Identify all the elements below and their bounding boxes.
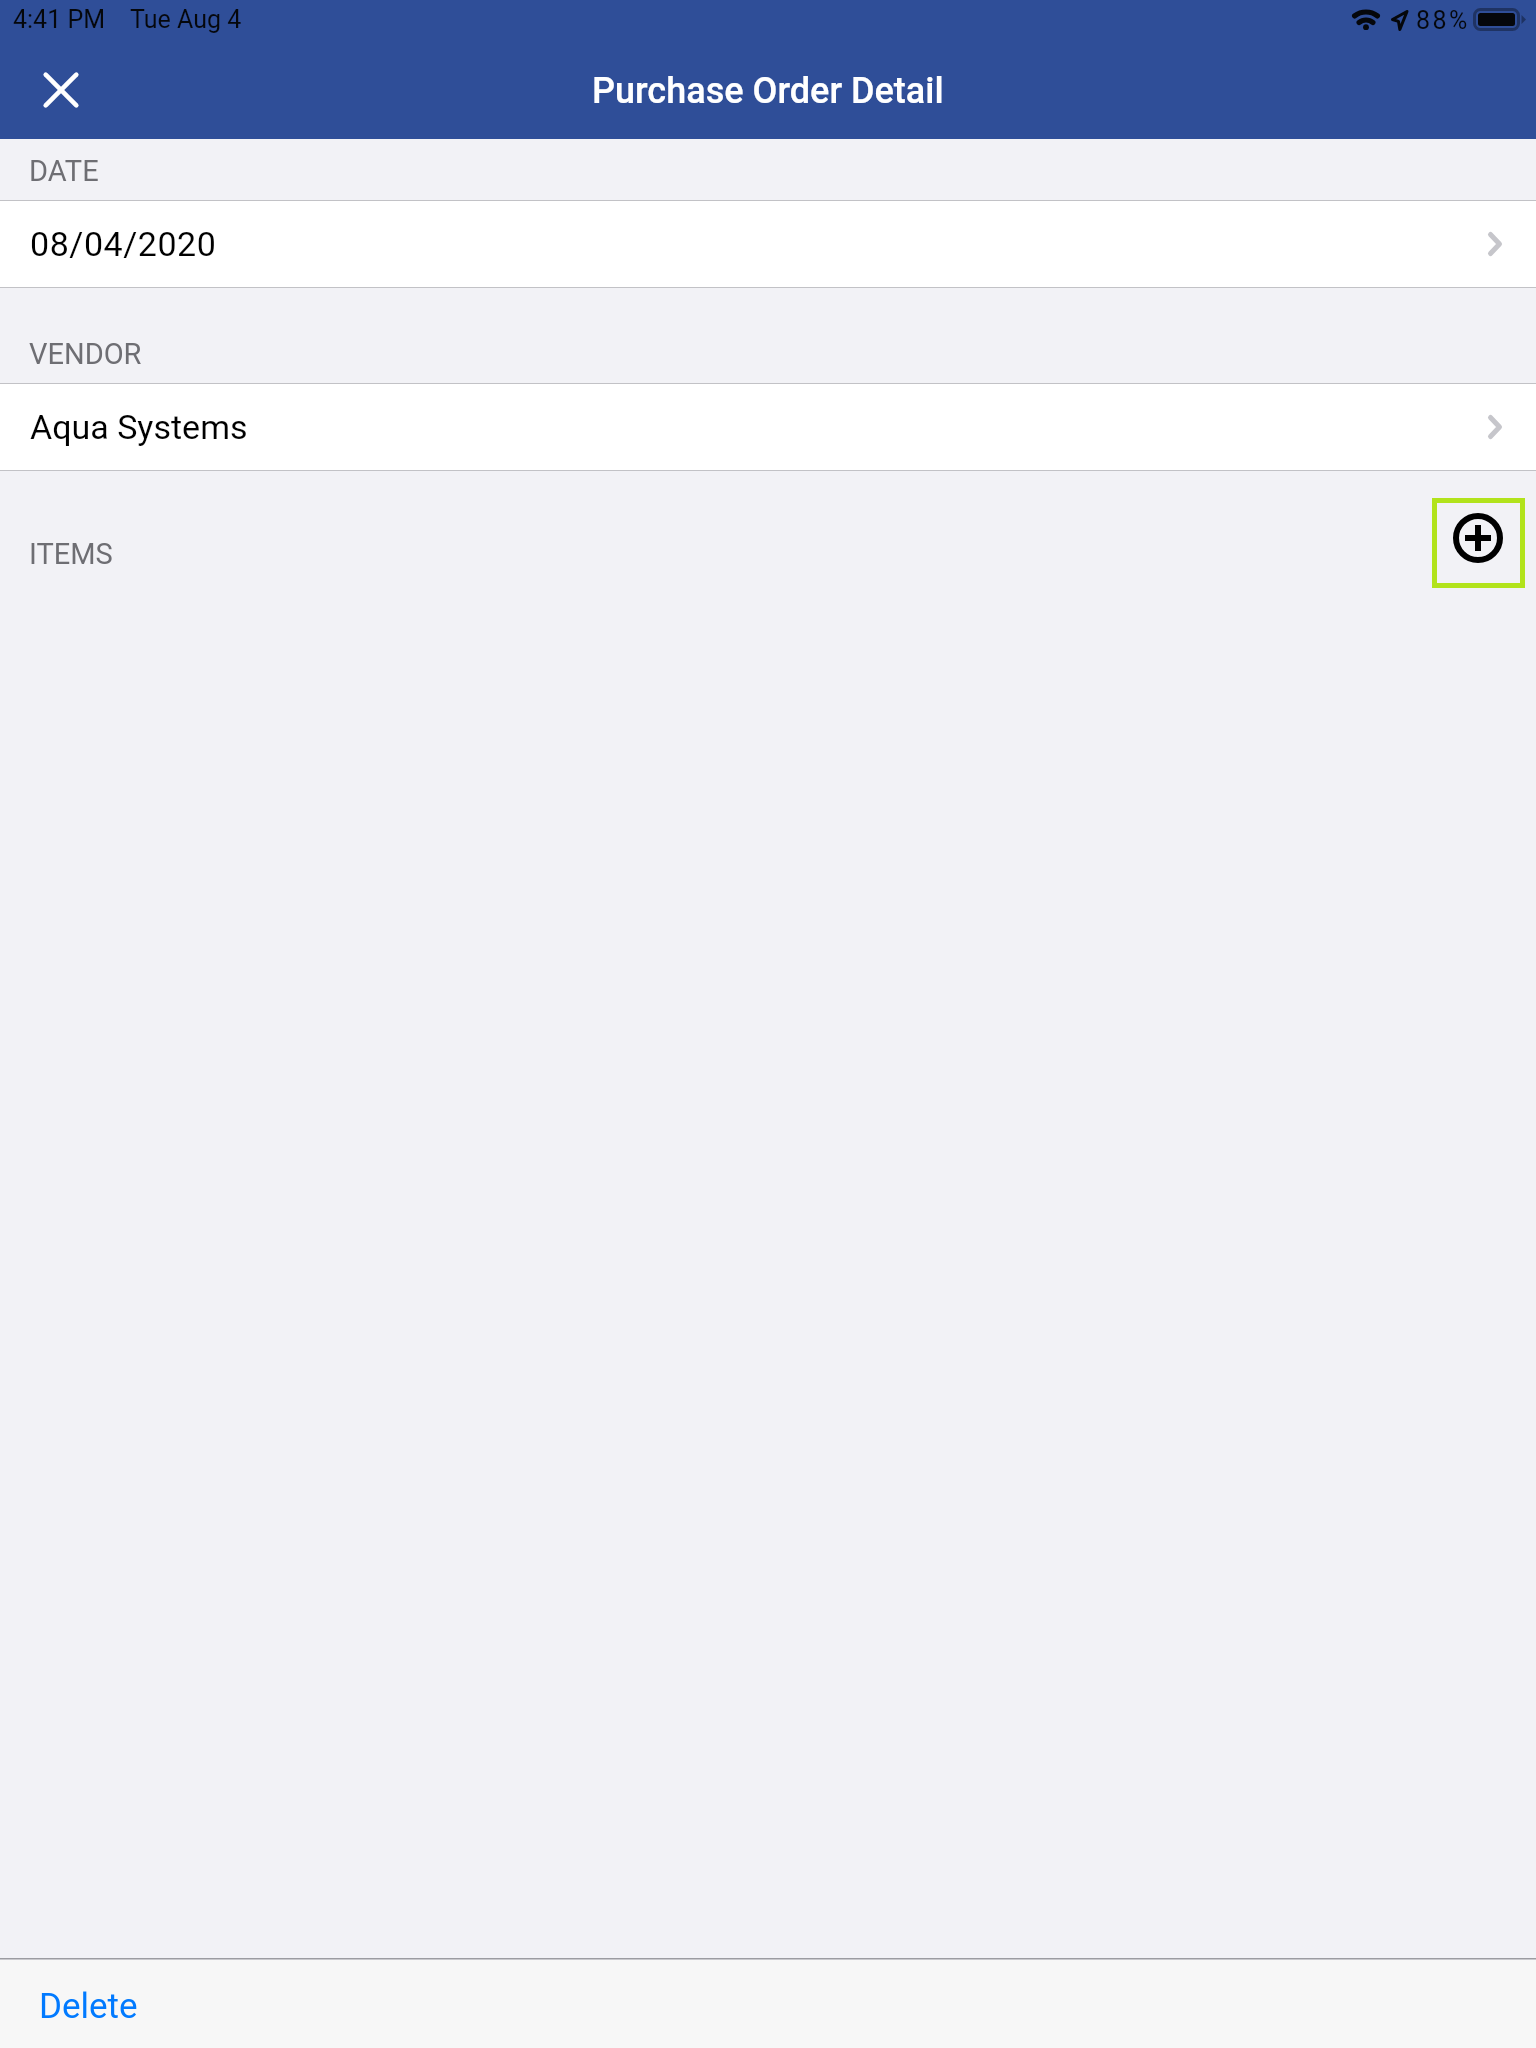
staticText: 4:41 PM	[13, 5, 106, 34]
staticText: 88%	[1416, 6, 1470, 35]
button[interactable]: 08/04/2020	[0, 201, 1536, 287]
staticText: DATE	[29, 154, 99, 188]
staticText: 08/04/2020	[30, 224, 217, 264]
staticText: Tue Aug 4	[130, 5, 242, 34]
button[interactable]: Delete	[27, 1960, 153, 2048]
button[interactable]: Aqua Systems	[0, 384, 1536, 470]
button[interactable]: Add item	[1432, 498, 1525, 588]
button[interactable]: Close	[17, 46, 105, 134]
staticText: Aqua Systems	[30, 407, 248, 447]
staticText: Delete	[39, 1986, 138, 2027]
staticText: VENDOR	[29, 337, 142, 371]
staticText: ITEMS	[29, 537, 113, 571]
staticText: Purchase Order Detail	[592, 70, 944, 112]
